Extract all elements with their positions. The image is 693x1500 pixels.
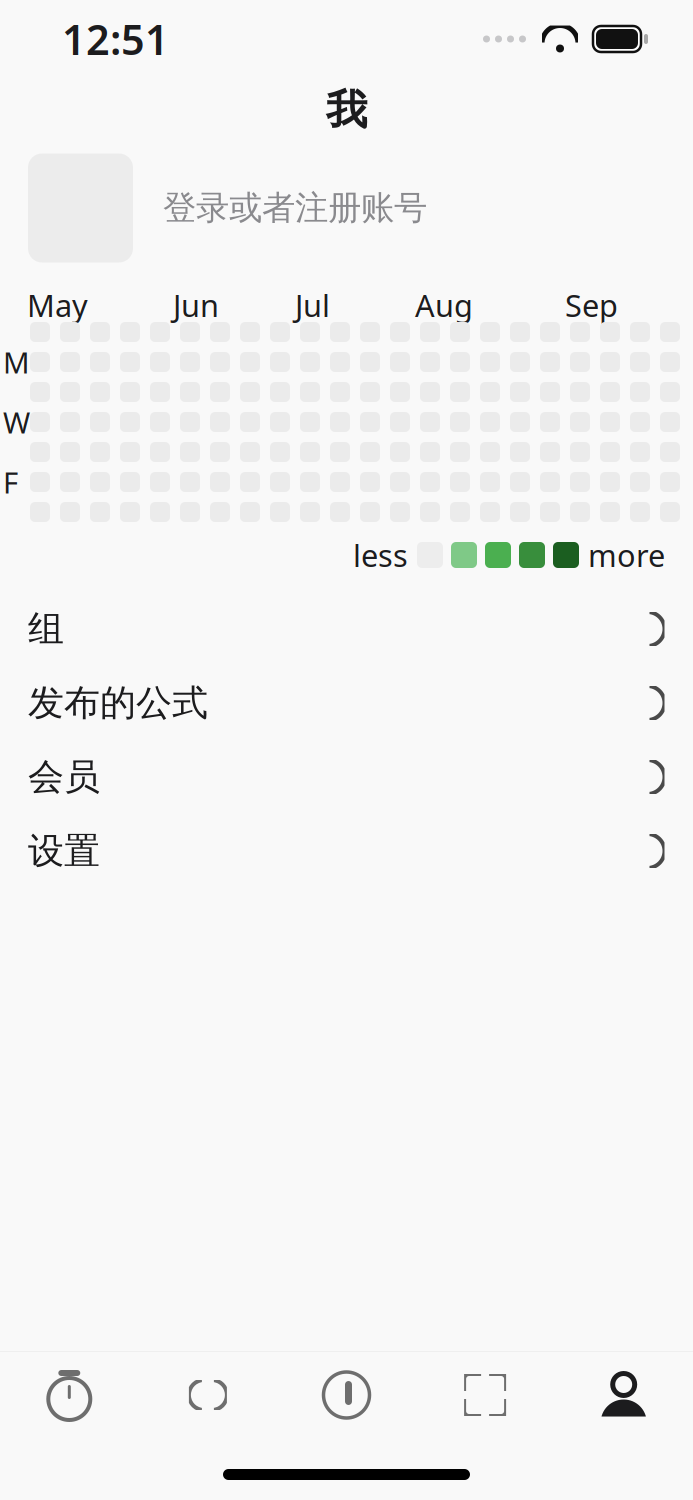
staticText: 组 (28, 607, 64, 651)
staticText: 我 (326, 85, 367, 135)
button[interactable]: Timer (0, 1352, 139, 1438)
staticText: 发布的公式 (28, 681, 208, 725)
staticText: Sep (565, 285, 618, 325)
staticText: Jul (295, 285, 330, 325)
staticText: M (3, 342, 30, 381)
button[interactable]: Scan (416, 1352, 554, 1438)
staticText: Aug (415, 285, 473, 325)
button[interactable]: 发布的公式 (0, 666, 693, 740)
button[interactable]: 设置 (0, 814, 693, 888)
staticText: 登录或者注册账号 (163, 187, 427, 228)
button[interactable]: 登录或者注册账号 (0, 142, 693, 274)
button[interactable]: 会员 (0, 740, 693, 814)
staticText: F (3, 462, 18, 501)
staticText: less (353, 535, 408, 575)
staticText: May (27, 285, 88, 325)
staticText: 设置 (28, 829, 100, 873)
button[interactable]: Explore (277, 1352, 416, 1438)
staticText: 12:51 (62, 12, 169, 66)
button[interactable]: Code (139, 1352, 277, 1438)
staticText: 会员 (28, 755, 100, 799)
button[interactable]: 组 (0, 592, 693, 666)
staticText: Jun (173, 285, 219, 325)
staticText: W (3, 402, 30, 441)
staticText: more (588, 535, 665, 575)
button[interactable]: Profile (554, 1352, 693, 1438)
